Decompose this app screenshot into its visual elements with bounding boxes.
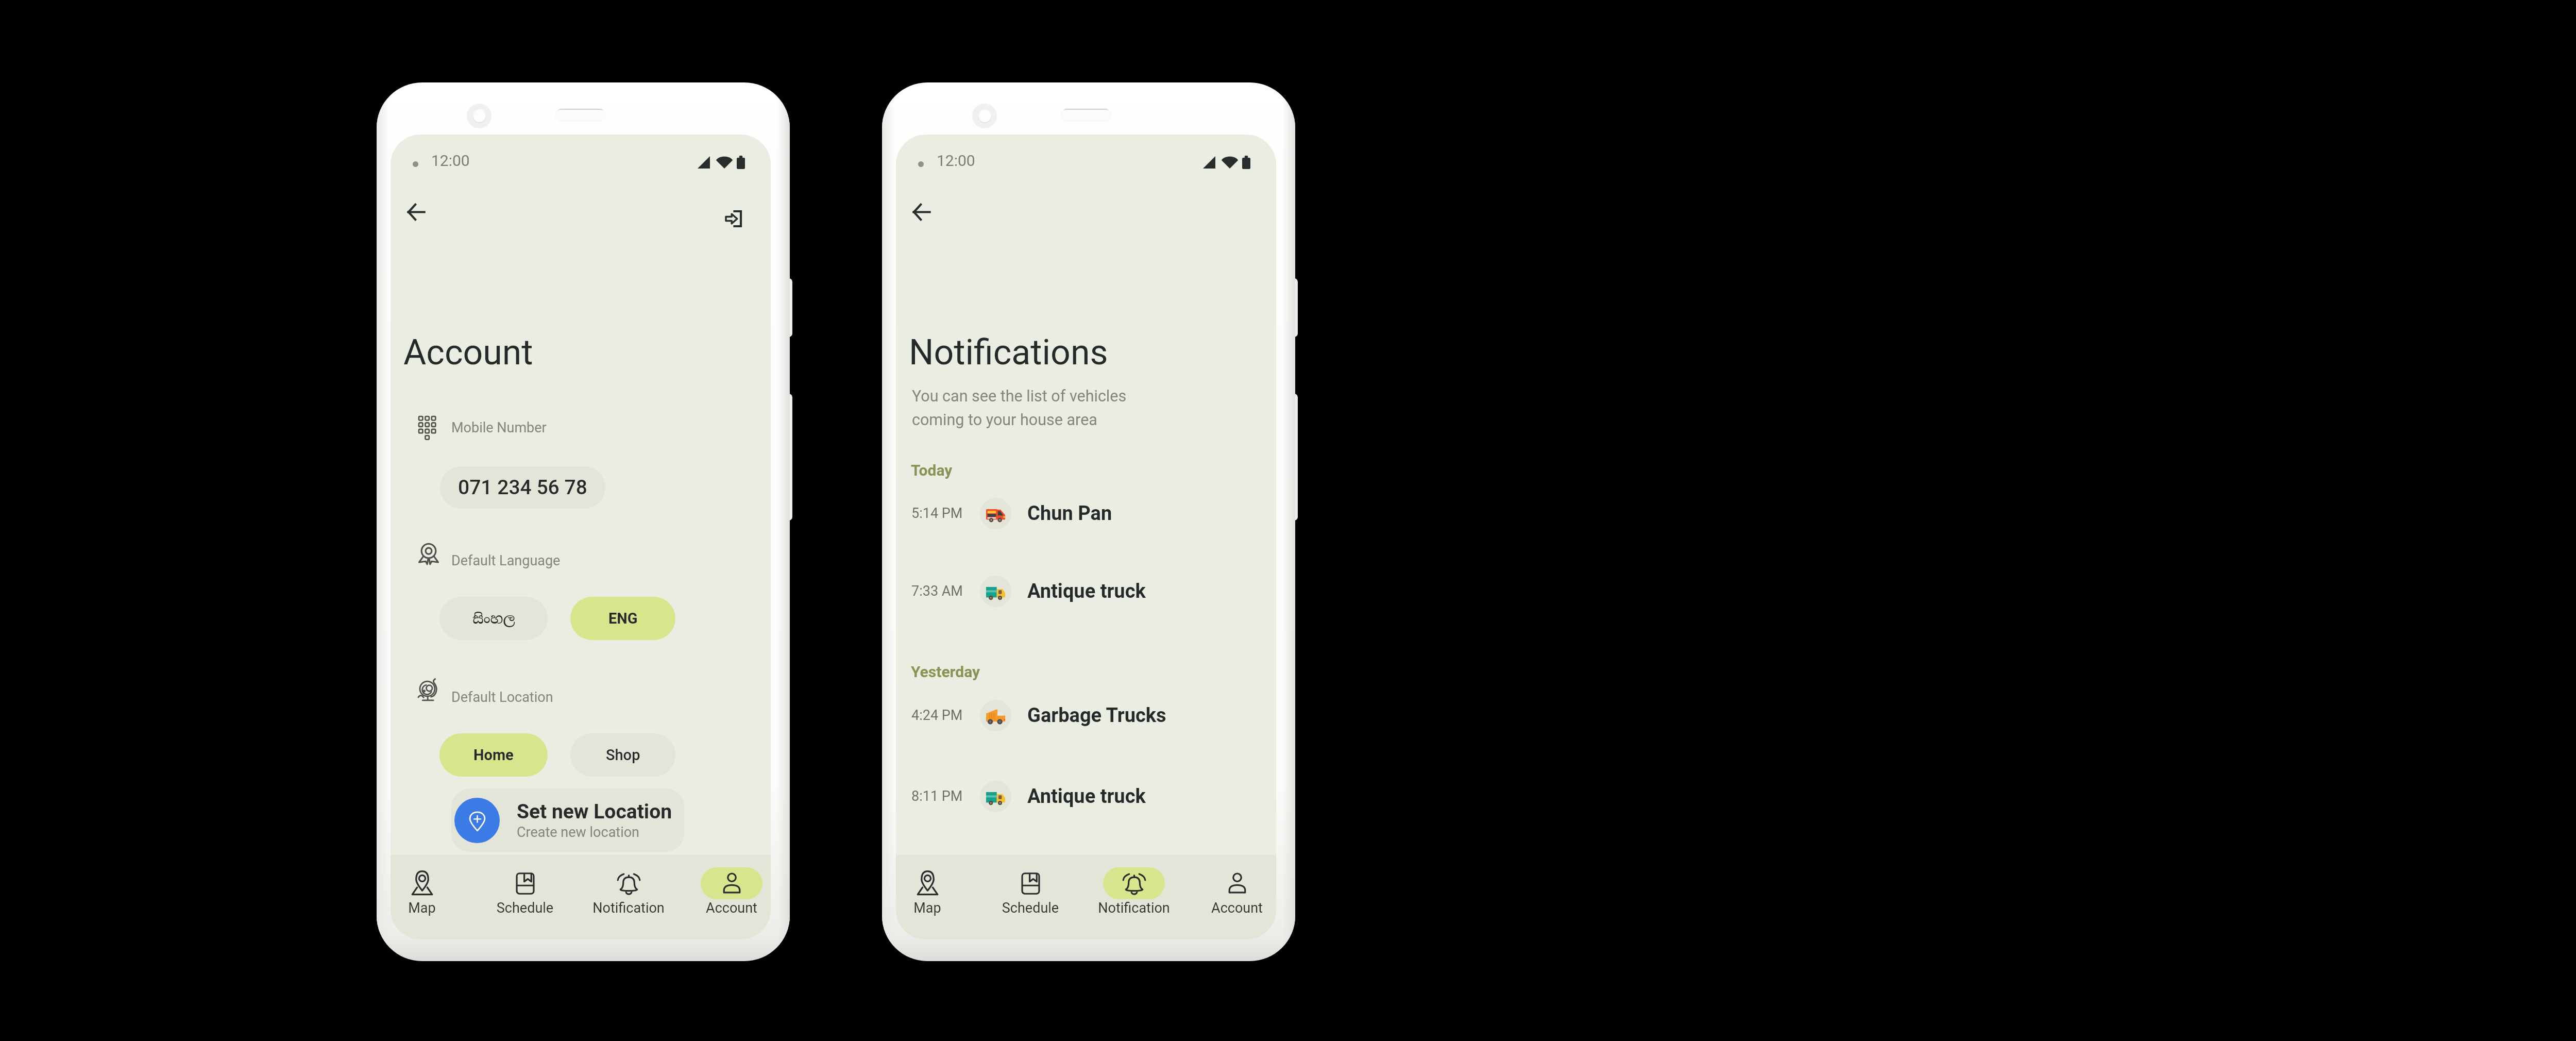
staticText: Yesterday [911,663,980,681]
staticText: Home [473,746,514,764]
staticText: 8:11 PM [911,788,980,804]
button[interactable]: 7:33 AM [896,568,1276,614]
button[interactable]: Notification [587,855,670,939]
staticText: Set new Location [517,800,672,824]
staticText: Account [403,332,533,373]
staticText: Antique truck [1027,580,1146,603]
button[interactable]: 5:14 PM [896,490,1276,536]
staticText: Chun Pan [1027,502,1112,525]
staticText: 7:33 AM [911,583,980,599]
button[interactable]: Back [396,192,436,232]
button[interactable]: Shop [570,733,675,777]
staticText: Shop [606,746,640,764]
button[interactable]: Account [1196,855,1276,939]
button[interactable]: Notification [1093,855,1175,939]
staticText: සිංහල [472,610,515,628]
staticText: Map [391,900,463,916]
button[interactable]: සිංහල [439,597,548,640]
staticText: Schedule [484,900,566,916]
button[interactable]: Log out [713,198,753,239]
button[interactable]: Home [439,733,548,777]
button[interactable]: Back [901,192,941,232]
staticText: Today [911,461,953,479]
staticText: Map [896,900,969,916]
button[interactable]: 4:24 PM [896,692,1276,738]
staticText: Antique truck [1027,785,1146,808]
staticText: Default Location [451,689,553,706]
button[interactable]: 8:11 PM [896,773,1276,819]
button[interactable]: Set new Location [451,788,684,852]
staticText: Create new location [517,824,640,841]
button[interactable]: Schedule [989,855,1072,939]
staticText: Account [690,900,771,916]
staticText: 12:00 [937,152,975,170]
staticText: 12:00 [431,152,470,170]
button[interactable]: 071 234 56 78 [440,466,605,509]
button[interactable]: Account [690,855,771,939]
staticText: 5:14 PM [911,505,980,522]
staticText: Default Language [451,552,561,569]
staticText: ENG [608,610,638,627]
staticText: Notification [1093,900,1175,916]
button[interactable]: ENG [570,597,675,640]
staticText: Notifications [909,332,1108,373]
staticText: Mobile Number [451,419,547,436]
staticText: Account [1196,900,1276,916]
staticText: Schedule [989,900,1072,916]
staticText: 071 234 56 78 [458,476,587,499]
button[interactable]: Schedule [484,855,566,939]
staticText: Notification [587,900,670,916]
staticText: 4:24 PM [911,707,980,724]
staticText: You can see the list of vehicles coming … [912,387,1127,429]
button[interactable]: Map [896,855,969,939]
staticText: Garbage Trucks [1027,704,1166,727]
button[interactable]: Map [391,855,463,939]
